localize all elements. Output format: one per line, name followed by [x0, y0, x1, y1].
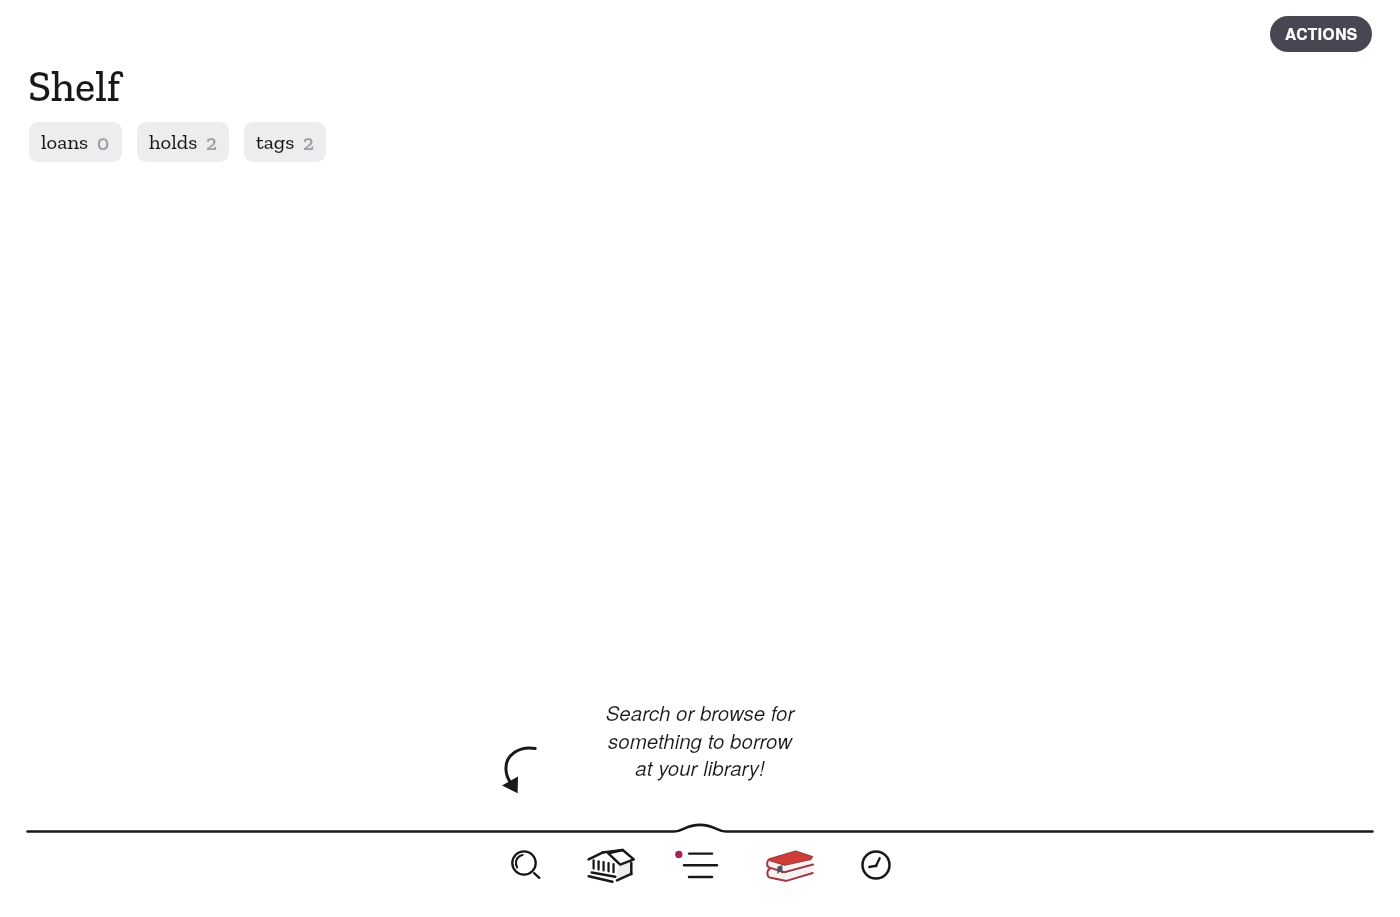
staticText: Shelf — [28, 61, 121, 112]
button[interactable]: loans — [29, 122, 122, 162]
staticText: 2 — [303, 130, 314, 155]
button[interactable]: Lists — [654, 840, 742, 898]
button[interactable]: Library — [567, 840, 655, 898]
button[interactable]: ACTIONS — [1270, 16, 1372, 52]
button[interactable]: History — [832, 840, 920, 898]
staticText: ACTIONS — [1285, 23, 1358, 45]
staticText: loans — [41, 130, 89, 155]
staticText: holds — [149, 130, 198, 155]
button[interactable]: tags — [244, 122, 326, 162]
staticText: Search or browse for something to borrow… — [560, 698, 840, 781]
button[interactable]: Search — [481, 840, 569, 898]
staticText: 0 — [97, 130, 110, 155]
button[interactable]: holds — [137, 122, 229, 162]
button[interactable]: Shelf — [747, 840, 835, 898]
staticText: tags — [256, 130, 295, 155]
staticText: 2 — [206, 130, 217, 155]
